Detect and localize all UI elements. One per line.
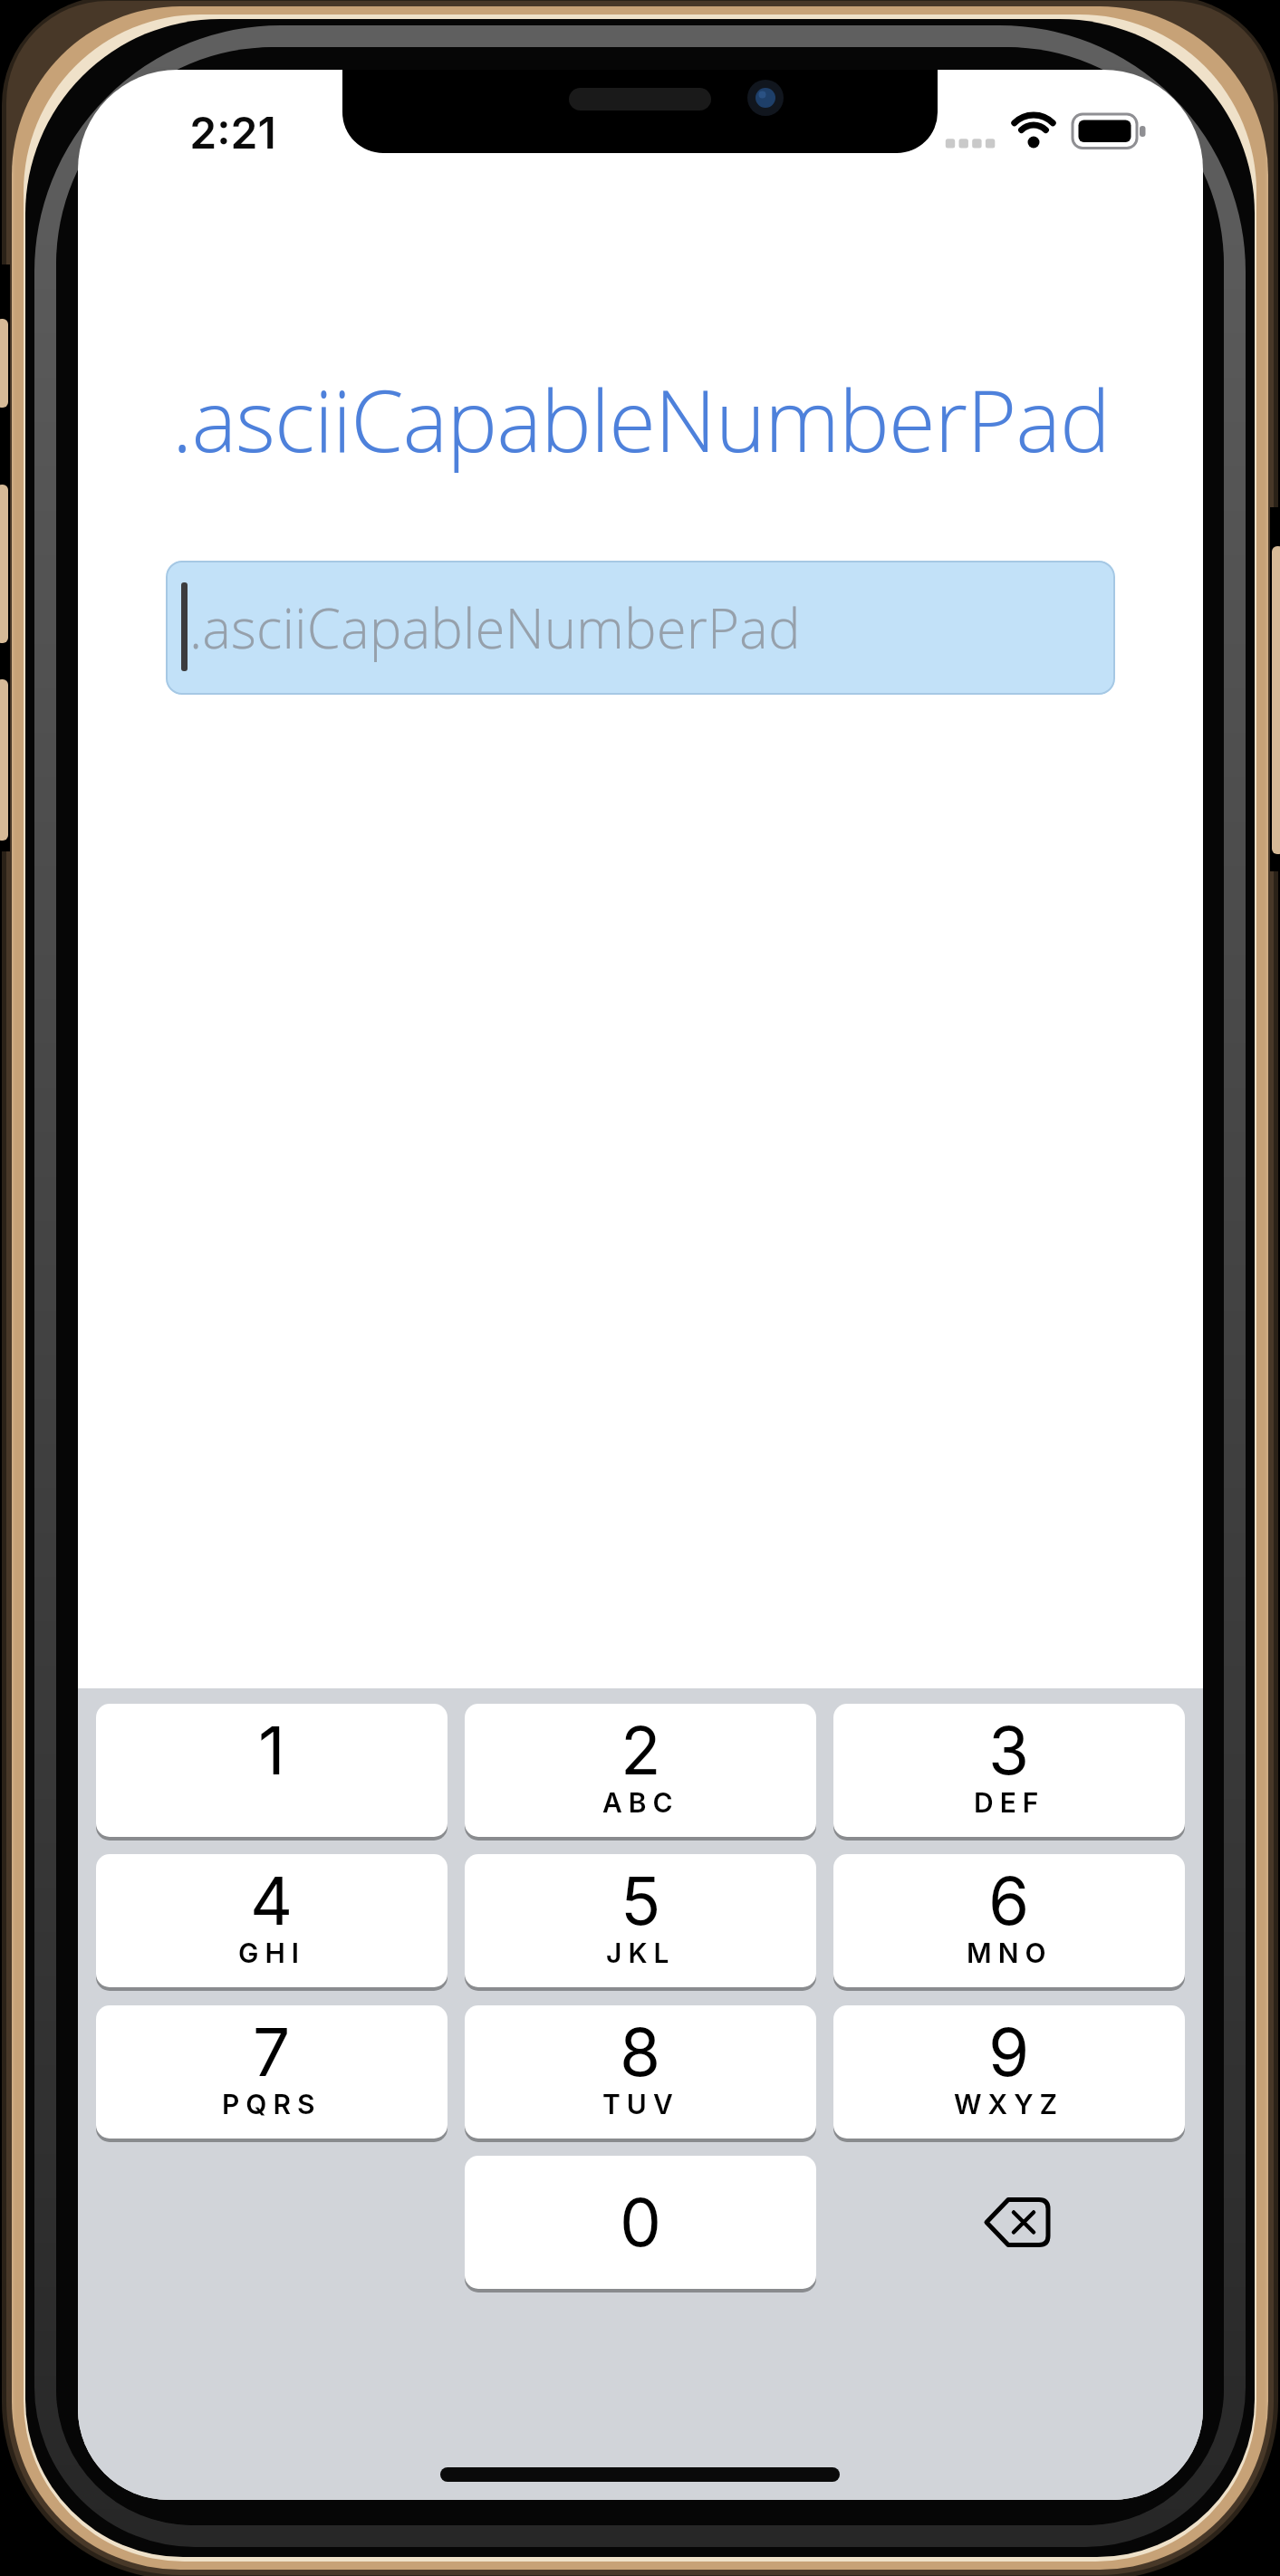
button[interactable]: 9 bbox=[833, 2005, 1185, 2139]
staticText: GHI bbox=[238, 1937, 306, 1969]
staticText: .asciiCapableNumberPad bbox=[172, 361, 1110, 477]
staticText: 5 bbox=[621, 1860, 661, 1940]
button[interactable] bbox=[833, 2156, 1185, 2289]
staticText: 1 bbox=[258, 1710, 285, 1790]
staticText: 4 bbox=[250, 1860, 294, 1940]
button[interactable]: 0 bbox=[465, 2156, 816, 2289]
button[interactable]: 6 bbox=[833, 1854, 1185, 1987]
staticText: 3 bbox=[988, 1710, 1030, 1790]
staticText: 2:21 bbox=[189, 106, 276, 159]
button[interactable]: 5 bbox=[465, 1854, 816, 1987]
staticText: 9 bbox=[988, 2012, 1030, 2091]
staticText: .asciiCapableNumberPad bbox=[189, 591, 801, 665]
staticText: 7 bbox=[253, 2012, 291, 2091]
button[interactable]: 4 bbox=[96, 1854, 448, 1987]
staticText: 2 bbox=[621, 1710, 661, 1790]
button[interactable]: 8 bbox=[465, 2005, 816, 2139]
staticText: WXYZ bbox=[954, 2088, 1064, 2120]
staticText: MNO bbox=[967, 1937, 1053, 1969]
staticText: 8 bbox=[620, 2012, 661, 2091]
button[interactable]: 2 bbox=[465, 1704, 816, 1837]
button[interactable]: 1 bbox=[96, 1704, 448, 1837]
staticText: JKL bbox=[606, 1937, 676, 1969]
staticText: 6 bbox=[988, 1860, 1030, 1940]
staticText: 0 bbox=[620, 2182, 662, 2262]
button[interactable]: .asciiCapableNumberPad bbox=[166, 561, 1115, 695]
staticText: DEF bbox=[974, 1786, 1045, 1819]
staticText: PQRS bbox=[222, 2088, 322, 2120]
button[interactable]: 3 bbox=[833, 1704, 1185, 1837]
button[interactable]: 7 bbox=[96, 2005, 448, 2139]
staticText: ABC bbox=[602, 1786, 679, 1819]
staticText: TUV bbox=[602, 2088, 679, 2120]
